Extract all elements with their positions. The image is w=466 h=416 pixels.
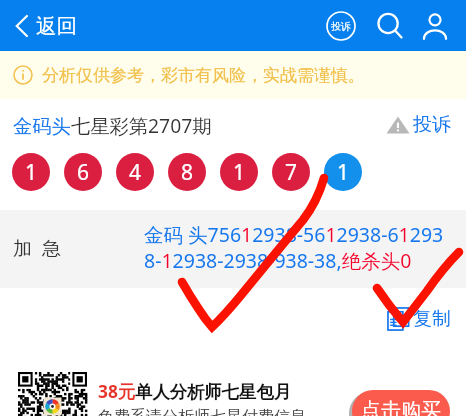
button[interactable]: 6 [64, 153, 102, 191]
button[interactable]: 7 [272, 153, 310, 191]
button[interactable]: 1 [324, 153, 362, 191]
staticText: 7 [285, 158, 298, 187]
staticText: 8 [181, 158, 194, 187]
staticText: 1 [25, 158, 38, 187]
staticText: 投诉 [413, 113, 451, 137]
staticText: 4 [129, 158, 142, 187]
staticText: 8-12938-2938-938-38,绝杀头0 [144, 247, 412, 274]
staticText: 1 [337, 158, 350, 187]
button[interactable]: 返回 [13, 13, 77, 39]
button[interactable]: 复制 [387, 307, 451, 331]
staticText: 金码 头75612938-5612938-61293 [144, 221, 444, 248]
button[interactable]: 8 [168, 153, 206, 191]
button[interactable]: Account [420, 11, 450, 41]
staticText: 1 [233, 158, 246, 187]
staticText: 加 急 [13, 235, 61, 261]
staticText: 免费系请分析师七星付费信息 [98, 407, 306, 416]
staticText: 38元单人分析师七星包月 [98, 380, 291, 404]
button[interactable]: 1 [220, 153, 258, 191]
staticText: 金码头七星彩第2707期 [13, 112, 212, 138]
button[interactable]: 1 [12, 153, 50, 191]
staticText: 复制 [413, 307, 451, 331]
button[interactable]: 投诉 [326, 11, 356, 41]
staticText: 6 [77, 158, 90, 187]
staticText: 分析仅供参考，彩市有风险，实战需谨慎。 [42, 65, 365, 86]
staticText: 投诉 [331, 20, 351, 33]
button[interactable]: 点击购买 [352, 390, 450, 416]
staticText: 点击购买 [361, 398, 441, 416]
staticText: 返回 [36, 13, 77, 39]
button[interactable]: Search [374, 10, 406, 42]
button[interactable]: 投诉 [386, 113, 451, 137]
button[interactable]: 4 [116, 153, 154, 191]
